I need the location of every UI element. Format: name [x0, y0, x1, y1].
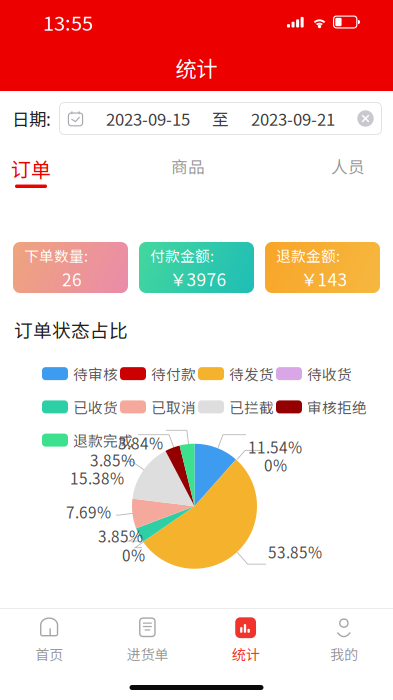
staticText: ￥3976	[169, 266, 226, 291]
staticText: 下单数量:	[24, 245, 88, 266]
staticText: 进货单	[126, 644, 168, 664]
staticText: 待发货	[229, 363, 274, 384]
staticText: 订单状态占比	[14, 316, 128, 343]
staticText: 已收货	[73, 396, 118, 417]
staticText: 3.85%	[98, 525, 143, 547]
staticText: 统计	[232, 644, 260, 664]
button[interactable]: 订单	[0, 154, 45, 188]
staticText: 审核拒绝	[307, 396, 367, 417]
staticText: 商品	[171, 154, 205, 178]
staticText: 退款完成	[73, 429, 133, 451]
staticText: 订单	[11, 154, 51, 183]
button[interactable]: 人员	[331, 154, 393, 188]
staticText: 7.69%	[66, 501, 111, 523]
staticText: 26	[62, 266, 82, 291]
staticText: 待付款	[151, 363, 196, 384]
staticText: 待收货	[307, 363, 352, 384]
staticText: 3.84%	[118, 432, 163, 454]
staticText: 至	[212, 106, 229, 130]
button[interactable]: 我的	[295, 617, 393, 664]
button[interactable]: 首页	[0, 617, 98, 664]
staticText: 待审核	[73, 363, 118, 384]
button[interactable]: 统计	[196, 617, 295, 664]
staticText: 已取消	[151, 396, 196, 417]
staticText: 13:55	[43, 7, 93, 36]
staticText: 已拦截	[229, 396, 274, 417]
staticText: 15.38%	[70, 467, 124, 489]
button[interactable]: 2023-09-15	[59, 102, 382, 135]
staticText: ￥143	[300, 266, 347, 291]
staticText: 统计	[175, 52, 217, 83]
staticText: 人员	[331, 154, 365, 178]
staticText: 2023-09-21	[251, 106, 335, 130]
staticText: 日期:	[12, 106, 51, 131]
staticText: 3.85%	[90, 449, 135, 471]
staticText: 我的	[330, 644, 358, 664]
staticText: 0%	[122, 544, 145, 566]
staticText: 退款金额:	[276, 245, 340, 266]
button[interactable]: 进货单	[98, 617, 196, 664]
staticText: 付款金额:	[150, 245, 214, 266]
staticText: 0%	[264, 454, 287, 476]
button[interactable]: 商品	[171, 154, 205, 188]
staticText: 首页	[35, 644, 63, 664]
staticText: 2023-09-15	[106, 106, 190, 130]
staticText: 11.54%	[248, 436, 302, 458]
staticText: 53.85%	[268, 541, 322, 563]
